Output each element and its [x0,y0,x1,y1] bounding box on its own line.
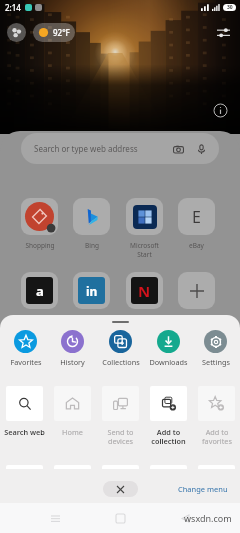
button[interactable]: Account [7,23,26,42]
staticText: wsxdn.com [184,512,232,524]
staticText: Bing [85,241,99,250]
staticText: History [60,357,85,367]
button[interactable]: Add to favorites [193,386,240,447]
staticText: Add to favorites [202,427,232,447]
button[interactable]: 92°F [33,23,75,42]
staticText: Add to collection [151,427,186,447]
button[interactable]: Camera search [171,142,185,156]
staticText: 92°F [53,27,70,38]
button[interactable]: Change menu [178,484,228,494]
button[interactable]: Search web [1,386,48,437]
button[interactable]: Home [49,386,96,437]
staticText: Downloads [149,357,188,367]
button[interactable]: a [21,272,58,309]
button[interactable]: Send to devices [97,386,144,447]
staticText: Home [62,427,83,437]
button[interactable]: Shopping [21,198,58,250]
button[interactable]: Back [175,508,195,528]
button[interactable]: Collections [97,330,144,367]
staticText: Settings [202,357,230,367]
button[interactable]: Add to collection [145,386,192,447]
staticText: Change menu [178,484,228,494]
button[interactable]: Settings [192,330,239,367]
staticText: Search web [4,427,45,437]
staticText: a [36,282,44,300]
staticText: 30 [227,4,233,11]
button[interactable]: Image information [211,101,229,119]
staticText: Favorites [10,357,42,367]
button[interactable]: Voice search [194,142,208,156]
staticText: E [192,206,201,228]
button[interactable]: N [126,272,163,309]
button[interactable]: E [178,198,215,250]
staticText: 2:14 [5,2,21,13]
button[interactable]: Microsoft Start [126,198,163,259]
staticText: eBay [189,241,204,250]
button[interactable]: Recents [45,508,65,528]
button[interactable]: Close menu [103,481,138,497]
staticText: in [86,283,98,299]
button[interactable]: Page settings [213,22,233,42]
button[interactable]: Bing [73,198,110,250]
staticText: Shopping [25,241,55,250]
button[interactable]: Favorites [2,330,49,367]
button[interactable] [178,272,215,309]
staticText: Collections [102,357,140,367]
staticText: Search or type web address [34,143,138,154]
button[interactable]: Home [110,508,130,528]
button[interactable]: in [73,272,110,309]
staticText: Microsoft Start [130,241,159,259]
button[interactable]: Downloads [145,330,192,367]
staticText: Send to devices [107,427,134,447]
button[interactable]: Search or type web address [21,133,219,164]
staticText: N [138,281,151,301]
button[interactable]: History [49,330,96,367]
